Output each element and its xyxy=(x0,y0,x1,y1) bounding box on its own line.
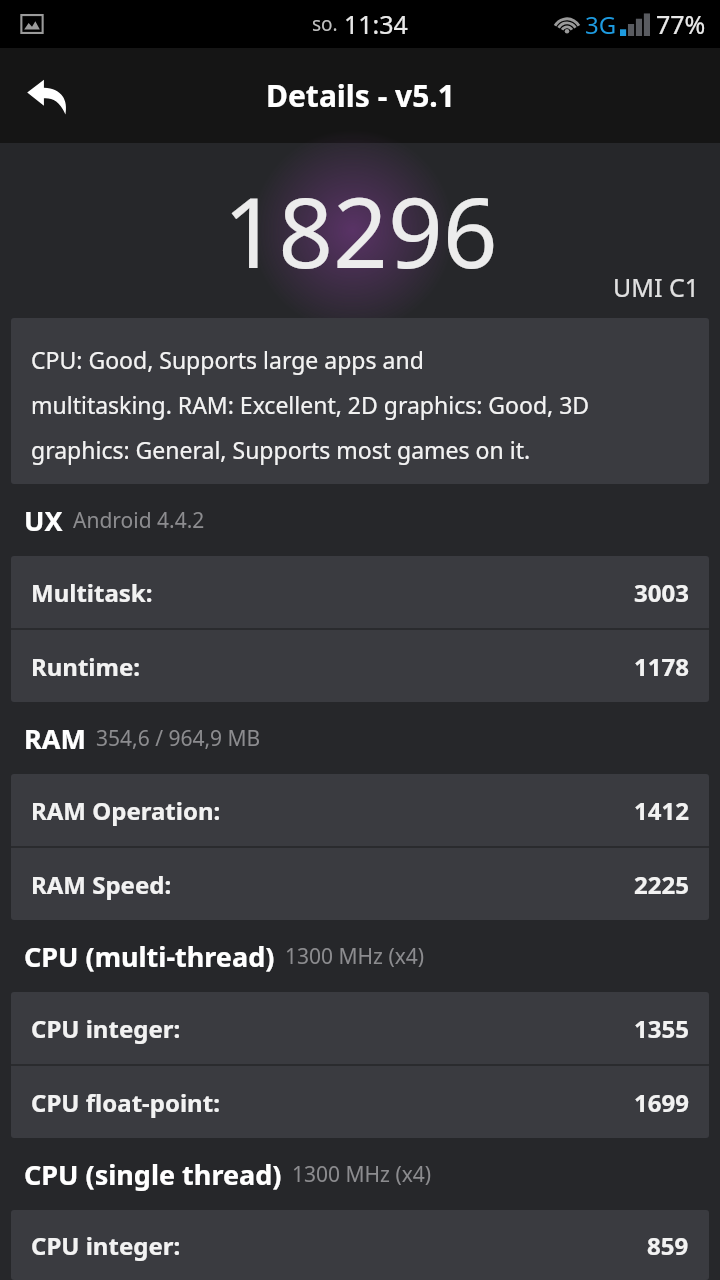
button[interactable]: CPU float-point: xyxy=(11,1066,709,1138)
button[interactable]: Back xyxy=(14,63,80,129)
staticText: CPU: Good, Supports large apps and xyxy=(31,344,424,375)
staticText: UMI C1 xyxy=(613,270,700,304)
button[interactable]: CPU integer: xyxy=(11,1210,709,1280)
button[interactable]: CPU integer: xyxy=(11,992,709,1064)
button[interactable]: RAM Speed: xyxy=(11,848,709,920)
button[interactable]: CPU: Good, Supports large apps and xyxy=(11,318,709,484)
staticText: 1178 xyxy=(634,650,689,683)
staticText: so. xyxy=(312,11,338,37)
staticText: 77% xyxy=(656,7,706,41)
staticText: RAM Speed: xyxy=(31,868,172,901)
staticText: 1300 MHz (x4) xyxy=(292,1160,432,1189)
staticText: Details - v5.1 xyxy=(266,75,455,116)
staticText: CPU (single thread) xyxy=(24,1156,282,1193)
staticText: CPU integer: xyxy=(31,1012,181,1045)
staticText: 354,6 / 964,9 MB xyxy=(96,724,261,753)
button[interactable]: Multitask: xyxy=(11,556,709,628)
staticText: Runtime: xyxy=(31,650,141,683)
staticText: multitasking. RAM: Excellent, 2D graphic… xyxy=(31,389,590,420)
other: Screenshot xyxy=(18,10,46,38)
staticText: CPU (multi-thread) xyxy=(24,938,275,975)
staticText: Multitask: xyxy=(31,576,153,609)
staticText: 3003 xyxy=(634,576,689,609)
staticText: graphics: General, Supports most games o… xyxy=(31,434,531,465)
staticText: UX xyxy=(24,502,63,539)
staticText: 1300 MHz (x4) xyxy=(285,942,425,971)
staticText: Android 4.4.2 xyxy=(73,506,205,535)
button[interactable]: RAM Operation: xyxy=(11,774,709,846)
staticText: RAM Operation: xyxy=(31,794,221,827)
staticText: 18296 xyxy=(223,165,498,296)
staticText: 2225 xyxy=(634,868,689,901)
staticText: CPU integer: xyxy=(31,1229,181,1262)
staticText: 3G xyxy=(585,8,617,41)
staticText: 859 xyxy=(647,1229,689,1262)
staticText: RAM xyxy=(24,720,86,757)
staticText: 1699 xyxy=(634,1086,689,1119)
staticText: 1355 xyxy=(634,1012,689,1045)
button[interactable]: Runtime: xyxy=(11,630,709,702)
staticText: 11:34 xyxy=(344,7,408,41)
staticText: CPU float-point: xyxy=(31,1086,220,1119)
staticText: 1412 xyxy=(634,794,689,827)
